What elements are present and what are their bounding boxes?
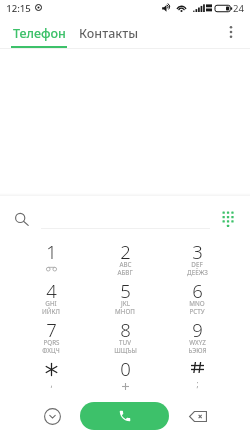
staticText: 1 [46,239,57,264]
button[interactable]: 7 [15,315,87,353]
button[interactable]: 2 [89,237,161,275]
button[interactable]: 9 [161,315,233,353]
staticText: 2 [120,239,131,264]
staticText: ; [196,378,199,389]
staticText: PQRS [43,338,60,347]
staticText: , [50,378,53,389]
button[interactable]: 8 [89,315,161,353]
staticText: 4 [46,278,57,303]
staticText: 12:15 [6,2,31,15]
staticText: MNO [189,299,205,308]
staticText: TUV [119,338,131,347]
button[interactable]: , [15,354,87,392]
button[interactable]: 5 [89,276,161,314]
staticText: 0 [120,356,131,381]
staticText: ШЩЪЫ [114,346,137,355]
button[interactable]: Dialpad [216,206,239,229]
button[interactable]: 1 [15,237,87,275]
staticText: АБВГ [117,268,133,277]
button[interactable]: 0 [89,354,161,392]
staticText: ИЙКЛ [42,307,60,316]
staticText: GHI [45,299,57,308]
staticText: 5 [120,278,131,303]
staticText: РСТУ [189,307,205,316]
staticText: 24 [233,2,244,15]
button[interactable]: Search [8,206,35,233]
staticText: 7 [46,317,57,342]
button[interactable]: ; [161,354,233,392]
button[interactable]: Контакты [73,20,143,49]
button[interactable]: 3 [161,237,233,275]
button[interactable]: Call [80,402,169,430]
button[interactable]: 4 [15,276,87,314]
button[interactable]: Backspace [181,400,214,433]
staticText: ФХЦЧ [42,346,60,355]
staticText: DEF [191,260,203,269]
staticText: 6 [192,278,203,303]
staticText: ЬЭЮЯ [188,346,207,355]
staticText: Телефон [13,25,66,42]
button[interactable]: Телефон [11,20,67,49]
staticText: 8 [120,317,131,342]
staticText: WXYZ [189,338,206,347]
staticText: ДЕЁЖЗ [187,268,208,277]
button[interactable]: Hide keypad [36,400,69,433]
staticText: Контакты [79,25,138,42]
staticText: JKL [121,299,130,308]
staticText: МНОП [115,307,135,316]
button[interactable]: 6 [161,276,233,314]
staticText: 9 [192,317,203,342]
staticText: ABC [119,260,132,269]
staticText: 3 [192,239,203,264]
button[interactable]: More options [217,18,244,45]
